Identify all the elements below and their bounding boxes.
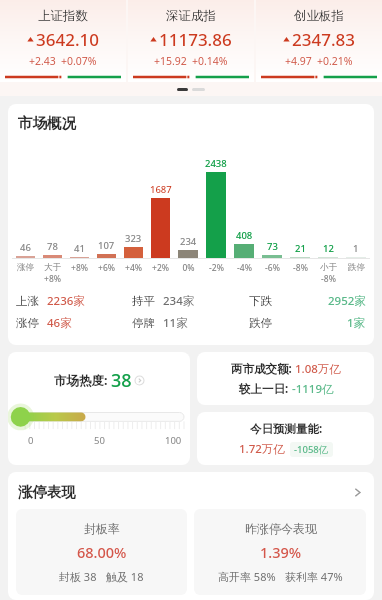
staticText: +8% [71, 262, 88, 274]
staticText: 0% [182, 262, 195, 274]
staticText: 234家 [163, 293, 195, 309]
staticText: -4% [237, 262, 252, 274]
staticText: -2% [209, 262, 224, 274]
staticText: 创业板指 [294, 8, 344, 24]
staticText: 触及 18 [106, 569, 144, 584]
staticText: +15.92 [154, 54, 187, 68]
staticText: 上涨 [16, 294, 39, 308]
staticText: 38 [111, 368, 132, 393]
staticText: 234 [180, 235, 197, 248]
button[interactable]: 上证指数 [0, 0, 126, 82]
staticText: -8% [293, 262, 308, 274]
staticText: 11173.86 [159, 28, 232, 51]
staticText: 0 [28, 434, 34, 447]
staticText: -8% [321, 273, 336, 285]
staticText: 涨停 [17, 262, 34, 273]
staticText: 1.72万亿 [239, 441, 285, 457]
staticText: 100 [165, 434, 182, 447]
staticText: 2236家 [47, 293, 85, 309]
staticText: 12 [323, 242, 334, 255]
staticText: +6% [98, 262, 115, 274]
button[interactable]: 两市成交额: [197, 352, 374, 405]
staticText: 跌停 [249, 316, 272, 330]
staticText: 323 [125, 232, 142, 245]
button[interactable]: 创业板指 [256, 0, 382, 82]
staticText: 41 [74, 242, 85, 255]
staticText: 市场热度: [54, 372, 111, 389]
staticText: 1.08万亿 [295, 361, 341, 377]
staticText: 107 [98, 239, 115, 252]
staticText: -1119亿 [292, 381, 334, 397]
staticText: 78 [47, 240, 58, 253]
staticText: 21 [295, 242, 306, 255]
staticText: 封板 38 [59, 569, 97, 584]
staticText: 较上一日: [239, 381, 292, 397]
button[interactable]: 深证成指 [128, 0, 254, 82]
staticText: 涨停 [16, 316, 39, 330]
staticText: +2.43 [29, 54, 56, 68]
staticText: 68.00% [77, 542, 127, 562]
staticText: 高开率 58% [218, 569, 276, 584]
staticText: 停牌 [132, 316, 155, 330]
staticText: 408 [236, 229, 253, 242]
staticText: 50 [94, 434, 105, 447]
button[interactable]: 涨停表现 [8, 472, 374, 509]
staticText: +0.21% [317, 54, 353, 68]
staticText: 2347.83 [292, 28, 355, 51]
staticText: 下跌 [249, 294, 272, 308]
staticText: +0.07% [61, 54, 97, 68]
staticText: -6% [265, 262, 280, 274]
staticText: 昨涨停今表现 [245, 521, 317, 536]
staticText: 1家 [347, 315, 366, 331]
staticText: -1058亿 [294, 443, 329, 456]
staticText: 两市成交额: [231, 361, 295, 377]
other: 查看更多涨停表现 [350, 485, 364, 499]
staticText: 1.39% [260, 542, 302, 562]
staticText: 获利率 47% [285, 569, 343, 584]
staticText: 小于 [320, 262, 337, 273]
button[interactable]: 市场热度: [8, 352, 190, 465]
button[interactable]: 封板率 [16, 509, 187, 595]
staticText: +4% [125, 262, 142, 274]
staticText: 73 [267, 240, 278, 253]
button[interactable]: 昨涨停今表现 [194, 509, 366, 595]
staticText: 2952家 [328, 293, 366, 309]
staticText: 深证成指 [166, 8, 216, 24]
staticText: 上证指数 [38, 8, 88, 24]
staticText: 今日预测量能: [250, 421, 323, 437]
staticText: 11家 [163, 315, 188, 331]
staticText: +2% [152, 262, 169, 274]
staticText: 2438 [205, 157, 227, 170]
staticText: 封板率 [84, 521, 120, 536]
staticText: 46 [20, 241, 31, 254]
button[interactable]: 今日预测量能: [197, 412, 374, 465]
staticText: 涨停表现 [18, 483, 76, 501]
staticText: 市场概况 [18, 114, 76, 132]
staticText: 1 [353, 242, 359, 255]
staticText: 1687 [150, 183, 172, 196]
staticText: 46家 [47, 315, 72, 331]
staticText: +8% [44, 273, 61, 285]
staticText: +0.14% [192, 54, 228, 68]
staticText: 持平 [132, 294, 155, 308]
staticText: 大于 [44, 262, 61, 273]
staticText: 3642.10 [36, 28, 99, 51]
staticText: +4.97 [285, 54, 312, 68]
staticText: 跌停 [348, 262, 365, 273]
